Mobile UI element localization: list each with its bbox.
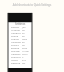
staticText: EN bbox=[22, 40, 26, 43]
staticText: Developer bbox=[11, 61, 21, 64]
staticText: 60 bbox=[22, 34, 25, 37]
staticText: v12 bbox=[22, 58, 26, 61]
button[interactable]: Storage bbox=[8, 49, 32, 52]
staticText: 12 GB bbox=[22, 49, 29, 52]
button[interactable]: Privacy bbox=[8, 43, 32, 46]
staticText: About phone bbox=[11, 58, 21, 61]
staticText: Sound volume bbox=[11, 34, 21, 37]
staticText: on bbox=[22, 43, 25, 46]
staticText: Jan bbox=[22, 25, 26, 28]
staticText: Network bbox=[11, 52, 21, 55]
staticText: Privacy bbox=[11, 43, 19, 46]
staticText: Language bbox=[11, 40, 21, 43]
staticText: Wi-Fi bbox=[22, 52, 28, 55]
button[interactable]: Settings bbox=[8, 22, 32, 25]
button[interactable]: About phone bbox=[8, 58, 32, 61]
staticText: all bbox=[22, 31, 25, 34]
staticText: 4 bbox=[22, 55, 24, 58]
button[interactable]: Account bbox=[8, 28, 32, 31]
staticText: dark bbox=[22, 37, 28, 40]
button[interactable]: Backup data bbox=[8, 46, 32, 49]
staticText: Account bbox=[11, 28, 21, 31]
staticText: Backup data bbox=[11, 46, 21, 49]
button[interactable]: Display name bbox=[8, 25, 32, 28]
button[interactable]: Shortcuts bbox=[8, 55, 32, 58]
staticText: auto bbox=[22, 46, 28, 49]
button[interactable]: Sound volume bbox=[8, 34, 32, 37]
staticText: Shortcuts bbox=[11, 55, 21, 58]
staticText: off bbox=[22, 61, 26, 64]
button[interactable]: Language bbox=[8, 40, 32, 43]
staticText: Settings bbox=[15, 22, 26, 25]
button[interactable]: Network bbox=[8, 52, 32, 55]
staticText: Display name bbox=[11, 25, 21, 28]
button[interactable]: Theme bbox=[8, 37, 32, 40]
staticText: Notification bbox=[11, 31, 21, 34]
staticText: on bbox=[22, 28, 25, 31]
staticText: Storage bbox=[11, 49, 20, 52]
button[interactable]: Notification bbox=[8, 31, 32, 34]
staticText: Add shortcuts to Quick Settings bbox=[0, 3, 64, 7]
button[interactable]: Developer bbox=[8, 61, 32, 64]
staticText: Theme bbox=[11, 37, 19, 40]
